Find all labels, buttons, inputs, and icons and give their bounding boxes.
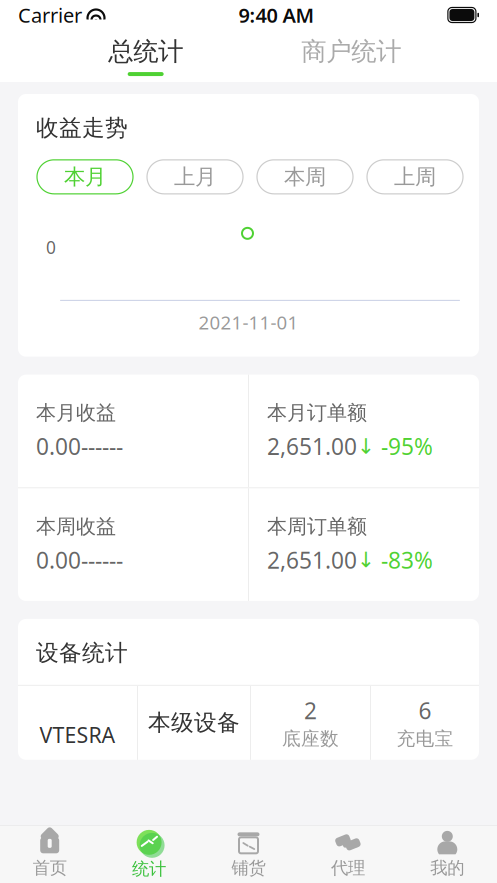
- staticText: 2,651.00: [267, 431, 357, 461]
- staticText: ↓: [357, 548, 375, 572]
- staticText: 铺货: [231, 857, 265, 879]
- staticText: 本周收益: [36, 514, 116, 539]
- staticText: 代理: [331, 857, 365, 879]
- button[interactable]: 上周: [367, 160, 463, 194]
- staticText: 6: [418, 695, 431, 725]
- button[interactable]: 首页: [0, 825, 99, 883]
- staticText: 底座数: [282, 727, 339, 750]
- button[interactable]: 商户统计: [291, 32, 411, 80]
- staticText: 商户统计: [301, 36, 401, 67]
- staticText: Carrier: [18, 2, 82, 28]
- staticText: 充电宝: [396, 727, 453, 750]
- staticText: 9:40 AM: [238, 2, 314, 28]
- staticText: 本月订单额: [267, 401, 367, 425]
- staticText: 2021-11-01: [198, 310, 298, 335]
- button[interactable]: 铺货: [199, 825, 298, 883]
- staticText: VTESRA: [39, 721, 115, 749]
- staticText: 本周: [284, 164, 326, 190]
- staticText: 设备统计: [36, 639, 128, 667]
- staticText: 我的: [430, 857, 464, 879]
- staticText: 0.00------: [36, 545, 123, 575]
- staticText: 总统计: [108, 36, 183, 67]
- staticText: -83%: [375, 545, 433, 575]
- staticText: 本月: [64, 164, 106, 190]
- staticText: 收益走势: [36, 114, 128, 142]
- button[interactable]: 本周: [257, 160, 353, 194]
- staticText: 2: [304, 695, 317, 725]
- staticText: 本月收益: [36, 401, 116, 425]
- staticText: 上月: [174, 164, 216, 190]
- staticText: 0.00------: [36, 431, 123, 461]
- button[interactable]: 上月: [147, 160, 243, 194]
- button[interactable]: 本月: [37, 160, 133, 194]
- button[interactable]: 代理: [298, 825, 398, 883]
- staticText: ↓: [357, 434, 375, 458]
- staticText: 首页: [33, 857, 67, 879]
- button[interactable]: 统计: [99, 824, 199, 883]
- staticText: 2,651.00: [267, 545, 357, 575]
- staticText: 统计: [132, 858, 166, 880]
- button[interactable]: 总统计: [86, 32, 206, 80]
- button[interactable]: 我的: [398, 825, 497, 883]
- staticText: 0: [46, 236, 56, 259]
- staticText: -95%: [375, 431, 433, 461]
- staticText: 本周订单额: [267, 514, 367, 539]
- staticText: 本级设备: [148, 709, 240, 737]
- staticText: 上周: [394, 164, 436, 190]
